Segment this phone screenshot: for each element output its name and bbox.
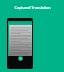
- button[interactable]: Captured Translation: [0, 0, 64, 14]
- button[interactable]: Translate: [7, 18, 33, 69]
- staticText: Captured Translation: [14, 5, 51, 10]
- button[interactable]: Translate: [18, 56, 23, 61]
